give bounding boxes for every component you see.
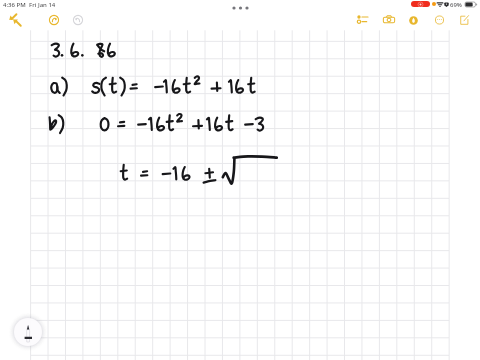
staticText: 4:36 PM [3, 1, 26, 9]
button[interactable]: Screen recording [411, 1, 430, 7]
button[interactable]: Undo [49, 15, 59, 25]
button[interactable]: Outline [357, 15, 368, 24]
staticText: 69% [450, 1, 462, 9]
button[interactable]: Camera [383, 15, 395, 24]
button[interactable]: Redo [73, 15, 83, 25]
button[interactable]: Exit full screen [9, 14, 21, 26]
button[interactable]: Edit [460, 15, 469, 25]
button[interactable]: Marker [409, 16, 418, 25]
button[interactable]: More options [435, 15, 444, 25]
button[interactable]: Pen tool [14, 318, 42, 346]
staticText: Fri Jan 14 [29, 1, 56, 9]
